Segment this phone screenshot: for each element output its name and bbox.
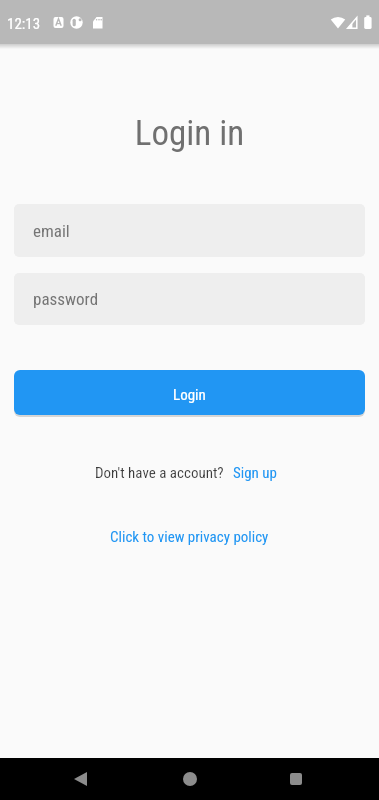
staticText: password (33, 289, 99, 309)
button[interactable]: Click to view privacy policy (110, 528, 269, 546)
button[interactable] (269, 765, 323, 792)
button[interactable]: password (14, 273, 365, 325)
button[interactable]: Login (14, 370, 365, 415)
button[interactable] (163, 765, 217, 792)
button[interactable]: email (14, 204, 365, 257)
staticText: Login (173, 386, 206, 404)
button[interactable] (53, 765, 107, 792)
staticText: Click to view privacy policy (110, 528, 269, 546)
staticText: Don't have a account? (95, 464, 224, 482)
staticText: email (33, 221, 70, 241)
staticText: Sign up (233, 464, 277, 482)
staticText: 12:13 (7, 15, 41, 33)
staticText: Login in (0, 113, 379, 154)
button[interactable]: Sign up (233, 464, 277, 482)
